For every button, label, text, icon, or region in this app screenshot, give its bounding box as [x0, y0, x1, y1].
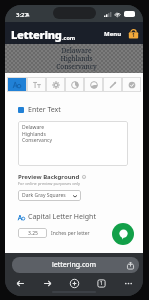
button[interactable]: Tool 7	[122, 77, 141, 92]
staticText: lettering.com	[22, 260, 126, 270]
staticText: Dark Gray Squares	[22, 192, 66, 199]
staticText: Delaware Highlands Conservancy	[56, 46, 97, 71]
staticText: 3.25	[28, 230, 38, 237]
button[interactable]: 3.25	[18, 228, 47, 238]
button[interactable]: Share	[126, 261, 135, 270]
button[interactable]: Tool 5	[84, 77, 103, 92]
button[interactable]: Delaware Highlands Conservancy	[18, 121, 128, 166]
button[interactable]: Tool 1	[7, 77, 27, 92]
staticText: Lettering	[11, 27, 62, 42]
button[interactable]: More	[117, 277, 139, 289]
staticText: Inches per letter	[51, 230, 90, 237]
button[interactable]: Tool 4	[65, 77, 84, 92]
button[interactable]: Back	[9, 277, 31, 289]
button[interactable]: Menu	[102, 28, 124, 40]
staticText: 1	[132, 32, 135, 39]
staticText: 1	[100, 280, 103, 287]
staticText: Capital Letter Height	[28, 212, 96, 222]
staticText: Delaware Highlands Conservancy	[22, 124, 52, 144]
button[interactable]: Tool 6	[103, 77, 122, 92]
button[interactable]: Tool 3	[46, 77, 65, 92]
staticText: Enter Text	[28, 105, 61, 115]
button[interactable]: Cart	[127, 27, 140, 40]
button[interactable]: New tab	[63, 277, 85, 289]
staticText: .com	[62, 34, 76, 41]
staticText: Preview Background	[18, 173, 80, 181]
staticText: For online preview purposes only	[18, 181, 81, 186]
button[interactable]: Chat	[112, 223, 134, 245]
button[interactable]: lettering.com	[12, 257, 139, 273]
button[interactable]: Tool 2	[27, 77, 46, 92]
button[interactable]: Forward	[36, 277, 58, 289]
staticText: 3:27	[16, 11, 28, 19]
button[interactable]: Dark Gray Squares	[18, 190, 81, 201]
button[interactable]: Tabs	[90, 277, 112, 289]
